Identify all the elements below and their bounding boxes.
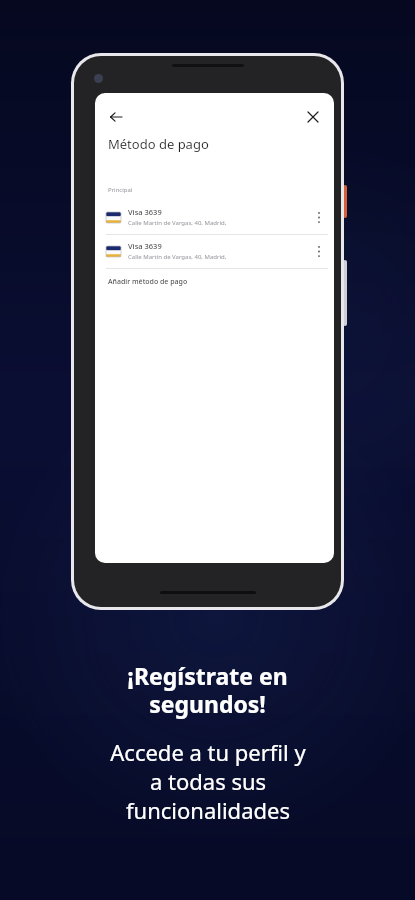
staticText: ¡Regístrate en segundos! [127,660,288,720]
button[interactable]: Añadir método de pago [95,269,334,295]
button[interactable]: More options [312,242,326,260]
staticText: Principal [108,186,133,194]
button[interactable]: Back [106,107,126,127]
button[interactable]: Visa 3639 [95,201,334,234]
staticText: Calle Martín de Vargas, 40, Madrid, [128,253,227,261]
staticText: Añadir método de pago [108,277,188,287]
staticText: Visa 3639 [128,207,162,217]
button[interactable]: Visa 3639 [95,235,334,268]
staticText: Método de pago [108,135,209,153]
button[interactable]: More options [312,208,326,226]
button[interactable]: Close [303,107,323,127]
staticText: Calle Martín de Vargas, 40, Madrid, [128,219,227,227]
staticText: Visa 3639 [128,241,162,251]
staticText: Accede a tu perfil y a todas sus funcion… [110,737,306,825]
